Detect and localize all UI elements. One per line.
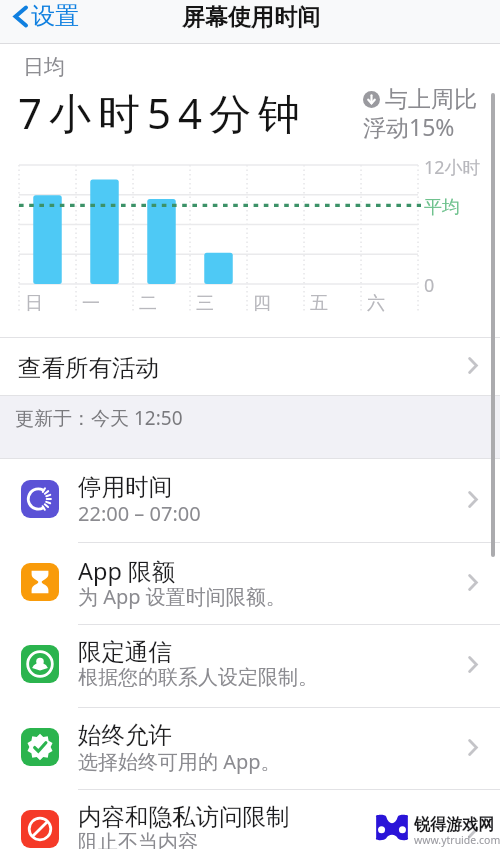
staticText: 0	[424, 273, 435, 298]
staticText: App 限额	[78, 555, 176, 587]
button[interactable]: 始终允许	[0, 707, 500, 790]
staticText: 根据您的联系人设定限制。	[78, 665, 318, 690]
staticText: 限定通信	[78, 637, 172, 667]
staticText: 为 App 设置时间限额。	[78, 583, 286, 610]
staticText: 阻止不当内容	[78, 830, 198, 849]
staticText: www.ytruide.com	[414, 833, 500, 847]
staticText: 查看所有活动	[18, 353, 159, 383]
staticText: 日均	[23, 54, 65, 80]
button[interactable]: 停用时间	[0, 459, 500, 542]
staticText: 日	[25, 292, 43, 315]
staticText: 设置	[31, 1, 79, 31]
staticText: 内容和隐私访问限制	[78, 802, 290, 832]
staticText: 六	[367, 292, 385, 315]
staticText: 更新于：今天 12:50	[15, 405, 183, 431]
staticText: 12小时	[424, 155, 481, 180]
staticText: 与上周比	[385, 85, 477, 114]
staticText: 22:00 – 07:00	[78, 500, 201, 527]
staticText: 五	[310, 292, 328, 315]
staticText: 三	[196, 292, 214, 315]
button[interactable]: 设置	[9, 1, 83, 31]
staticText: 始终允许	[78, 720, 172, 750]
staticText: 7小时54分钟	[18, 84, 308, 141]
button[interactable]: 内容和隐私访问限制	[0, 789, 500, 849]
staticText: 平均	[424, 196, 460, 219]
button[interactable]: 限定通信	[0, 624, 500, 707]
button[interactable]: App 限额	[0, 542, 500, 625]
staticText: 四	[253, 292, 271, 315]
staticText: 屏幕使用时间	[182, 3, 320, 32]
staticText: 二	[139, 292, 157, 315]
staticText: 选择始终可用的 App。	[78, 748, 281, 775]
button[interactable]: 查看所有活动	[0, 338, 500, 395]
staticText: 停用时间	[78, 472, 172, 502]
staticText: 浮动15%	[363, 111, 455, 142]
staticText: 一	[82, 292, 100, 315]
staticText: 锐得游戏网	[414, 815, 494, 835]
